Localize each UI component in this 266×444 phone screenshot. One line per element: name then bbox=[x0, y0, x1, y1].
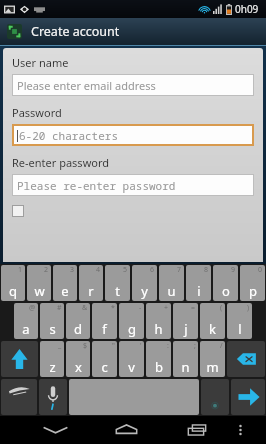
staticText: d bbox=[74, 320, 82, 338]
staticText: u bbox=[167, 282, 176, 300]
button[interactable]: Recent apps bbox=[172, 416, 223, 444]
staticText: + bbox=[164, 303, 169, 313]
button[interactable]: Enter bbox=[231, 379, 265, 415]
button[interactable] bbox=[12, 205, 24, 217]
button[interactable]: ( bbox=[200, 303, 225, 339]
staticText: User name bbox=[12, 55, 69, 70]
button[interactable]: & bbox=[66, 303, 90, 339]
staticText: a bbox=[22, 320, 30, 338]
button[interactable]: " bbox=[92, 341, 117, 377]
staticText: ) bbox=[247, 303, 250, 313]
staticText: & bbox=[82, 303, 88, 313]
staticText: c bbox=[101, 358, 108, 376]
staticText: 4 bbox=[96, 265, 101, 275]
button[interactable]: 2 bbox=[27, 265, 51, 301]
staticText: @ bbox=[29, 303, 36, 313]
staticText: j bbox=[184, 320, 188, 338]
staticText: 3 bbox=[70, 265, 75, 275]
staticText: h bbox=[154, 320, 163, 338]
staticText: l bbox=[238, 320, 242, 338]
staticText: # bbox=[57, 303, 62, 313]
button[interactable]: Symbols 123 bbox=[1, 379, 37, 415]
button[interactable]: Backspace bbox=[227, 341, 265, 377]
button[interactable]: / bbox=[200, 341, 225, 377]
staticText: y bbox=[141, 282, 148, 300]
button[interactable]: 4 bbox=[79, 265, 103, 301]
staticText: 0h09 bbox=[235, 2, 259, 16]
button[interactable]: App icon, navigate up bbox=[6, 23, 23, 40]
button[interactable]: $ bbox=[66, 341, 90, 377]
staticText: Please enter email address bbox=[17, 78, 156, 93]
button[interactable]: ' bbox=[119, 341, 144, 377]
staticText: _ bbox=[58, 341, 62, 351]
staticText: s bbox=[49, 320, 56, 338]
button[interactable]: More options bbox=[223, 416, 258, 444]
button[interactable]: : bbox=[146, 341, 171, 377]
staticText: w bbox=[34, 282, 45, 300]
staticText: Please re-enter password bbox=[17, 178, 176, 193]
button[interactable]: - bbox=[119, 303, 144, 339]
staticText: 7 bbox=[177, 265, 182, 275]
staticText: o bbox=[222, 282, 230, 300]
staticText: : bbox=[167, 341, 169, 351]
button[interactable]: + bbox=[146, 303, 171, 339]
staticText: 0 bbox=[258, 265, 263, 275]
button[interactable]: 8 bbox=[186, 265, 211, 301]
button[interactable]: 5 bbox=[105, 265, 130, 301]
button[interactable]: 1 bbox=[1, 265, 25, 301]
staticText: Password bbox=[12, 105, 62, 120]
staticText: p bbox=[249, 282, 257, 300]
button[interactable]: = bbox=[173, 303, 198, 339]
staticText: = bbox=[191, 303, 196, 313]
staticText: e bbox=[61, 282, 69, 300]
staticText: $ bbox=[83, 341, 88, 351]
staticText: 8 bbox=[204, 265, 209, 275]
staticText: ( bbox=[220, 303, 223, 313]
button[interactable]: * bbox=[92, 303, 117, 339]
button[interactable]: # bbox=[40, 303, 64, 339]
staticText: t bbox=[115, 282, 120, 300]
staticText: 2 bbox=[44, 265, 49, 275]
button[interactable]: Please enter email address bbox=[12, 74, 254, 96]
button[interactable]: Punctuation bbox=[201, 379, 229, 415]
button[interactable]: 6 bbox=[132, 265, 157, 301]
staticText: - bbox=[139, 303, 142, 313]
staticText: ; bbox=[194, 341, 196, 351]
staticText: ' bbox=[140, 341, 142, 351]
button[interactable]: @ bbox=[14, 303, 38, 339]
staticText: 9 bbox=[231, 265, 236, 275]
staticText: b bbox=[155, 358, 163, 376]
staticText: f bbox=[102, 320, 107, 338]
staticText: Create account bbox=[31, 23, 120, 40]
button[interactable]: Home bbox=[101, 416, 152, 444]
button[interactable]: ) bbox=[227, 303, 252, 339]
staticText: " bbox=[112, 341, 115, 351]
button[interactable]: 0 bbox=[240, 265, 265, 301]
staticText: z bbox=[49, 358, 56, 376]
staticText: 6 bbox=[150, 265, 155, 275]
staticText: * bbox=[111, 303, 115, 313]
button[interactable]: Shift bbox=[1, 341, 38, 377]
staticText: / bbox=[220, 341, 223, 351]
staticText: v bbox=[128, 358, 135, 376]
button[interactable]: Voice input bbox=[39, 379, 67, 415]
staticText: Re-enter password bbox=[12, 155, 110, 170]
button[interactable]: _ bbox=[40, 341, 64, 377]
staticText: n bbox=[181, 358, 190, 376]
button[interactable]: 6-20 characters bbox=[12, 124, 254, 146]
button[interactable]: Back bbox=[30, 416, 81, 444]
staticText: 6-20 characters bbox=[19, 128, 118, 143]
staticText: g bbox=[128, 320, 136, 338]
staticText: 5 bbox=[123, 265, 128, 275]
button[interactable]: ; bbox=[173, 341, 198, 377]
button[interactable]: 7 bbox=[159, 265, 184, 301]
staticText: k bbox=[209, 320, 216, 338]
button[interactable]: Please re-enter password bbox=[12, 174, 254, 196]
staticText: 1 bbox=[18, 265, 23, 275]
button[interactable]: 3 bbox=[53, 265, 77, 301]
button[interactable]: 9 bbox=[213, 265, 238, 301]
staticText: m bbox=[206, 358, 219, 376]
staticText: r bbox=[88, 282, 94, 300]
staticText: x bbox=[75, 358, 82, 376]
